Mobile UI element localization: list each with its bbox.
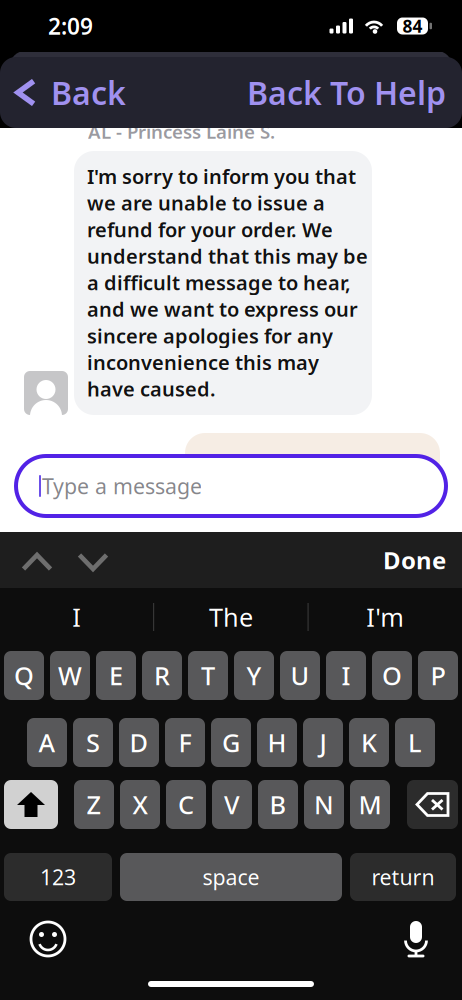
staticText: O (382, 659, 402, 692)
button[interactable]: W (50, 651, 90, 700)
button[interactable]: Q (4, 651, 44, 700)
button[interactable]: A (27, 718, 67, 767)
staticText: R (154, 659, 170, 692)
button[interactable]: return (350, 853, 456, 901)
button[interactable]: M (350, 780, 390, 829)
staticText: T (201, 659, 215, 692)
button[interactable]: Y (234, 651, 274, 700)
staticText: F (178, 726, 191, 759)
button[interactable]: Shift (4, 780, 58, 829)
button[interactable]: V (212, 780, 252, 829)
button[interactable]: X (120, 780, 160, 829)
button[interactable]: N (304, 780, 344, 829)
staticText: Back To Help (247, 71, 446, 114)
button[interactable]: H (257, 718, 297, 767)
button[interactable]: I (0, 588, 153, 646)
staticText: space (202, 863, 259, 891)
staticText: I'm (366, 600, 404, 634)
staticText: return (371, 863, 434, 891)
staticText: G (222, 726, 240, 759)
staticText: B (269, 788, 286, 821)
staticText: J (319, 726, 326, 759)
button[interactable]: Z (74, 780, 114, 829)
button[interactable]: I (326, 651, 366, 700)
button[interactable]: U (280, 651, 320, 700)
staticText: C (178, 788, 194, 821)
staticText: Type a message (42, 472, 202, 500)
button[interactable]: P (418, 651, 458, 700)
staticText: Q (14, 659, 34, 692)
staticText: M (358, 788, 381, 821)
staticText: Y (246, 659, 261, 692)
button[interactable]: S (73, 718, 113, 767)
button[interactable]: Next field (69, 545, 117, 579)
button[interactable]: Previous field (13, 545, 61, 579)
staticText: D (129, 726, 148, 759)
button[interactable]: K (349, 718, 389, 767)
staticText: V (224, 788, 240, 821)
staticText: E (109, 659, 123, 692)
button[interactable]: Done (373, 536, 456, 584)
button[interactable]: L (395, 718, 435, 767)
staticText: Done (383, 544, 446, 576)
button[interactable]: F (165, 718, 205, 767)
button[interactable]: Emoji keyboard (22, 913, 74, 965)
button[interactable]: B (258, 780, 298, 829)
staticText: K (361, 726, 377, 759)
staticText: I (341, 659, 350, 692)
button[interactable]: C (166, 780, 206, 829)
staticText: AL - Princess Laine S. (88, 119, 275, 144)
staticText: L (408, 726, 422, 759)
button[interactable]: The (154, 588, 308, 646)
staticText: U (290, 659, 309, 692)
button[interactable]: T (188, 651, 228, 700)
button[interactable]: D (119, 718, 159, 767)
staticText: 84 (402, 14, 422, 37)
button[interactable]: Dictation (392, 912, 440, 966)
button[interactable]: I'm (309, 588, 462, 646)
button[interactable]: Back (0, 61, 126, 124)
button[interactable]: G (211, 718, 251, 767)
staticText: The (209, 600, 253, 634)
staticText: N (314, 788, 334, 821)
staticText: P (430, 659, 445, 692)
staticText: S (86, 726, 100, 759)
staticText: 2:09 (48, 11, 93, 41)
button[interactable]: Back To Help (247, 61, 462, 124)
staticText: 123 (40, 863, 76, 891)
staticText: W (58, 659, 82, 692)
button[interactable]: E (96, 651, 136, 700)
staticText: I'm sorry to inform you that we are unab… (87, 163, 368, 402)
button[interactable]: J (303, 718, 343, 767)
staticText: Z (86, 788, 101, 821)
staticText: I (72, 600, 81, 634)
staticText: H (267, 726, 286, 759)
button[interactable]: R (142, 651, 182, 700)
button[interactable]: space (120, 853, 342, 901)
staticText: X (132, 788, 147, 821)
staticText: A (38, 726, 55, 759)
button[interactable]: 123 (4, 853, 112, 901)
button[interactable]: O (372, 651, 412, 700)
staticText: Back (51, 71, 126, 114)
button[interactable]: Delete (407, 780, 458, 829)
